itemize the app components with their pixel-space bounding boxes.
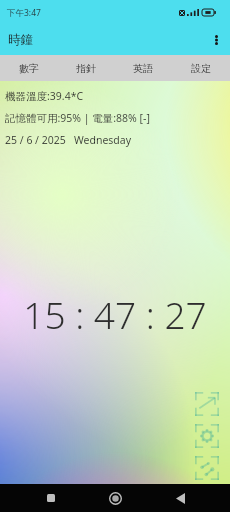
staticText: 指針 [76, 62, 96, 75]
button[interactable]: 英語 [114, 55, 172, 81]
staticText: 機器溫度:39.4*C [5, 89, 84, 103]
button[interactable]: 指針 [57, 55, 114, 81]
button[interactable]: 數字 [0, 55, 57, 81]
staticText: 25 / 6 / 2025 Wednesday [5, 133, 132, 147]
staticText: 記憶體可用:95% | 電量:88% [-] [5, 111, 150, 125]
staticText: 時鐘 [8, 32, 33, 48]
button[interactable]: Recent apps [37, 484, 65, 512]
button[interactable]: Home [101, 484, 129, 512]
staticText: 數字 [19, 62, 39, 75]
button[interactable]: Share [195, 456, 219, 480]
button[interactable]: More options [203, 24, 230, 55]
button[interactable]: Back [166, 484, 194, 512]
staticText: 英語 [133, 62, 153, 75]
staticText: 下午3:47 [7, 7, 41, 19]
staticText: 設定 [191, 62, 211, 75]
button[interactable]: 設定 [172, 55, 230, 81]
staticText: 15 : 47 : 27 [0, 289, 230, 339]
button[interactable]: Expand [195, 392, 219, 416]
button[interactable]: Settings [195, 424, 219, 448]
